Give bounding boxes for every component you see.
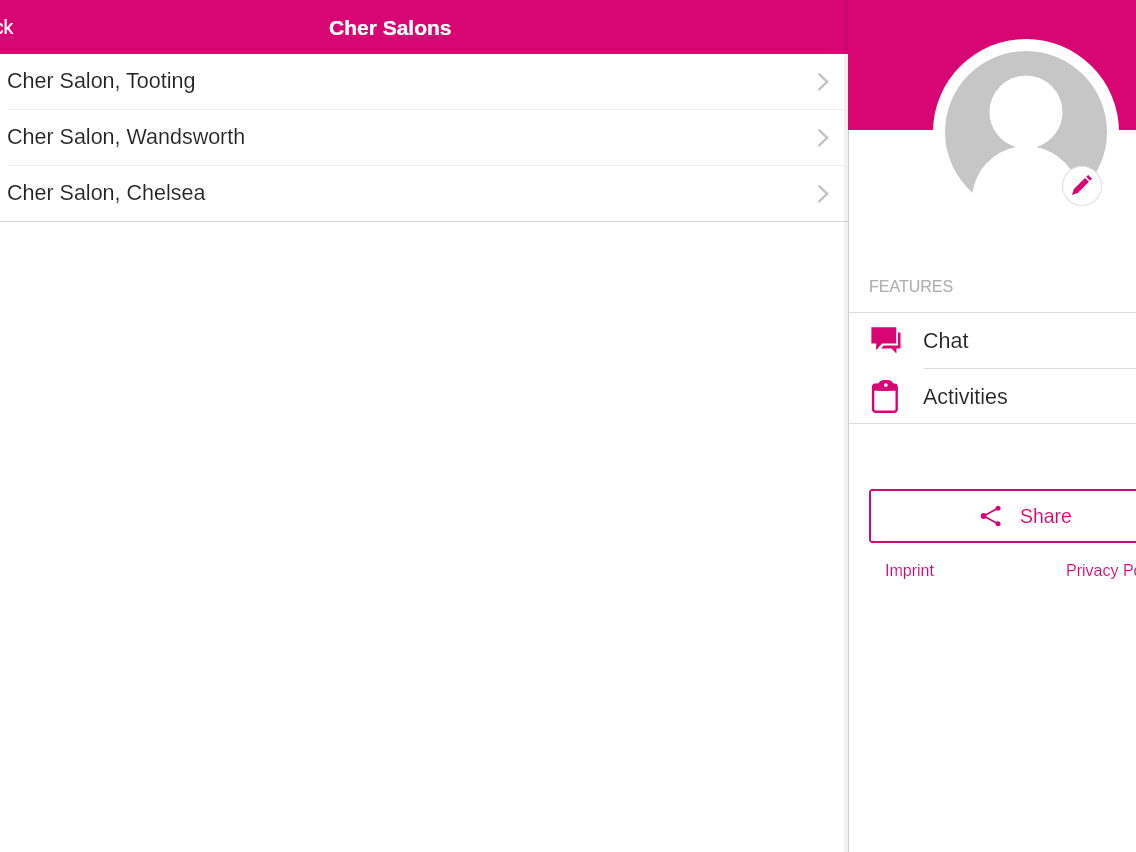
staticText: Activities (923, 385, 1008, 409)
button[interactable]: Cher Salon, Tooting (0, 54, 848, 109)
button[interactable]: Imprint (885, 559, 934, 583)
button[interactable]: Cher Salon, Chelsea (0, 166, 848, 221)
staticText: FEATURES (869, 278, 954, 296)
button[interactable]: Back (0, 7, 38, 47)
button[interactable]: Share (869, 489, 1136, 543)
button[interactable]: Edit profile picture (933, 39, 1119, 225)
button[interactable]: Privacy Policy (1066, 559, 1136, 583)
staticText: Share (1020, 505, 1072, 527)
staticText: Imprint (885, 562, 934, 580)
staticText: Back (0, 16, 14, 38)
staticText: Cher Salons (329, 16, 452, 39)
button[interactable]: Chat (848, 313, 1136, 368)
staticText: Cher Salon, Wandsworth (7, 125, 246, 149)
button[interactable]: Activities (848, 369, 1136, 423)
staticText: Chat (923, 329, 969, 353)
staticText: Privacy Policy (1066, 562, 1136, 580)
staticText: Cher Salon, Chelsea (7, 181, 206, 205)
staticText: Cher Salon, Tooting (7, 69, 196, 93)
button[interactable]: Cher Salon, Wandsworth (0, 110, 848, 165)
